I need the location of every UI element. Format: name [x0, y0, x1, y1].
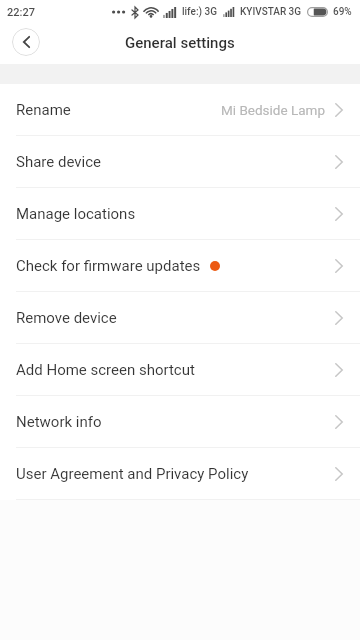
button[interactable]: Check for firmware updates — [0, 240, 360, 291]
staticText: Add Home screen shortcut — [16, 361, 195, 379]
button[interactable] — [12, 28, 40, 56]
button[interactable]: Add Home screen shortcut — [0, 344, 360, 395]
staticText: Manage locations — [16, 205, 136, 223]
button[interactable]: Manage locations — [0, 188, 360, 239]
button[interactable]: User Agreement and Privacy Policy — [0, 448, 360, 499]
staticText: General settings — [125, 34, 235, 52]
button[interactable]: Remove device — [0, 292, 360, 343]
staticText: User Agreement and Privacy Policy — [16, 465, 249, 483]
staticText: Mi Bedside Lamp — [221, 102, 326, 118]
button[interactable]: Rename — [0, 84, 360, 135]
staticText: Share device — [16, 153, 101, 171]
staticText: Network info — [16, 413, 102, 431]
staticText: 22:27 — [7, 6, 35, 19]
staticText: life:) 3G — [182, 6, 218, 18]
staticText: Check for firmware updates — [16, 257, 201, 275]
staticText: 69% — [333, 6, 352, 18]
staticText: Rename — [16, 101, 71, 119]
button[interactable]: Share device — [0, 136, 360, 187]
button[interactable]: Network info — [0, 396, 360, 447]
staticText: KYIVSTAR 3G — [240, 6, 302, 18]
staticText: Remove device — [16, 309, 117, 327]
